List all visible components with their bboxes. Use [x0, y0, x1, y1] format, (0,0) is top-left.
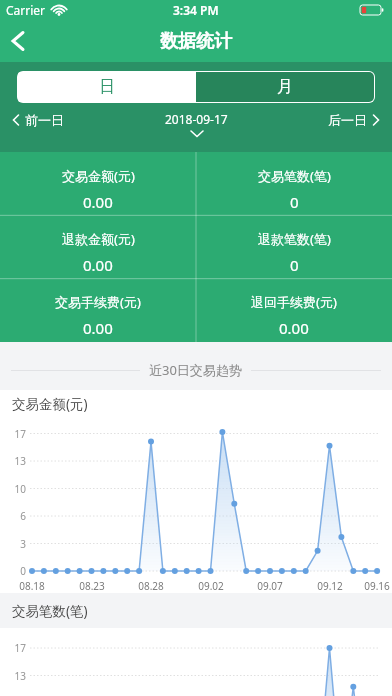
staticText: 日 — [99, 77, 115, 97]
staticText: 3:34 PM — [173, 2, 219, 18]
button[interactable]: 2018-09-17 — [165, 111, 228, 138]
staticText: 退回手续费(元) — [251, 293, 337, 311]
staticText: 退款笔数(笔) — [258, 230, 331, 248]
staticText: 09.02 — [183, 579, 239, 593]
button[interactable] — [0, 20, 36, 62]
staticText: 08.18 — [4, 579, 60, 593]
button[interactable]: 退款金额(元) — [0, 221, 196, 284]
staticText: 10 — [0, 482, 26, 496]
button[interactable]: 月 — [196, 72, 374, 102]
button[interactable]: 日 — [18, 72, 196, 102]
button[interactable]: 交易笔数(笔) — [196, 158, 392, 221]
staticText: 17 — [0, 641, 26, 655]
staticText: 6 — [0, 509, 26, 523]
staticText: 0.00 — [83, 255, 113, 275]
staticText: 08.23 — [64, 579, 120, 593]
staticText: 0 — [290, 192, 299, 212]
staticText: 3 — [0, 537, 26, 551]
staticText: 交易金额(元) — [12, 395, 88, 413]
staticText: 0.00 — [279, 318, 309, 338]
staticText: 交易手续费(元) — [55, 293, 141, 311]
staticText: 后一日 — [328, 112, 367, 128]
button[interactable]: 退回手续费(元) — [196, 284, 392, 347]
staticText: 17 — [0, 427, 26, 441]
staticText: 退款金额(元) — [62, 230, 135, 248]
staticText: 交易笔数(笔) — [258, 167, 331, 185]
button[interactable]: 交易金额(元) — [0, 158, 196, 221]
staticText: 13 — [0, 669, 26, 683]
staticText: 交易笔数(笔) — [12, 602, 88, 620]
button[interactable]: 后一日 — [328, 112, 380, 128]
staticText: 前一日 — [25, 112, 64, 128]
staticText: 0 — [0, 564, 26, 578]
staticText: 09.12 — [302, 579, 358, 593]
staticText: 月 — [277, 77, 293, 97]
button[interactable]: 退款笔数(笔) — [196, 221, 392, 284]
staticText: 近30日交易趋势 — [149, 361, 242, 379]
staticText: 09.16 — [349, 579, 392, 593]
staticText: 08.28 — [123, 579, 179, 593]
staticText: 交易金额(元) — [62, 167, 135, 185]
button[interactable]: 前一日 — [12, 112, 64, 128]
staticText: 数据统计 — [160, 30, 232, 53]
staticText: 09.07 — [242, 579, 298, 593]
staticText: 0.00 — [83, 318, 113, 338]
button[interactable]: 交易手续费(元) — [0, 284, 196, 347]
staticText: 13 — [0, 454, 26, 468]
staticText: 0.00 — [83, 192, 113, 212]
staticText: Carrier — [6, 2, 46, 18]
staticText: 2018-09-17 — [165, 111, 228, 127]
staticText: 0 — [290, 255, 299, 275]
